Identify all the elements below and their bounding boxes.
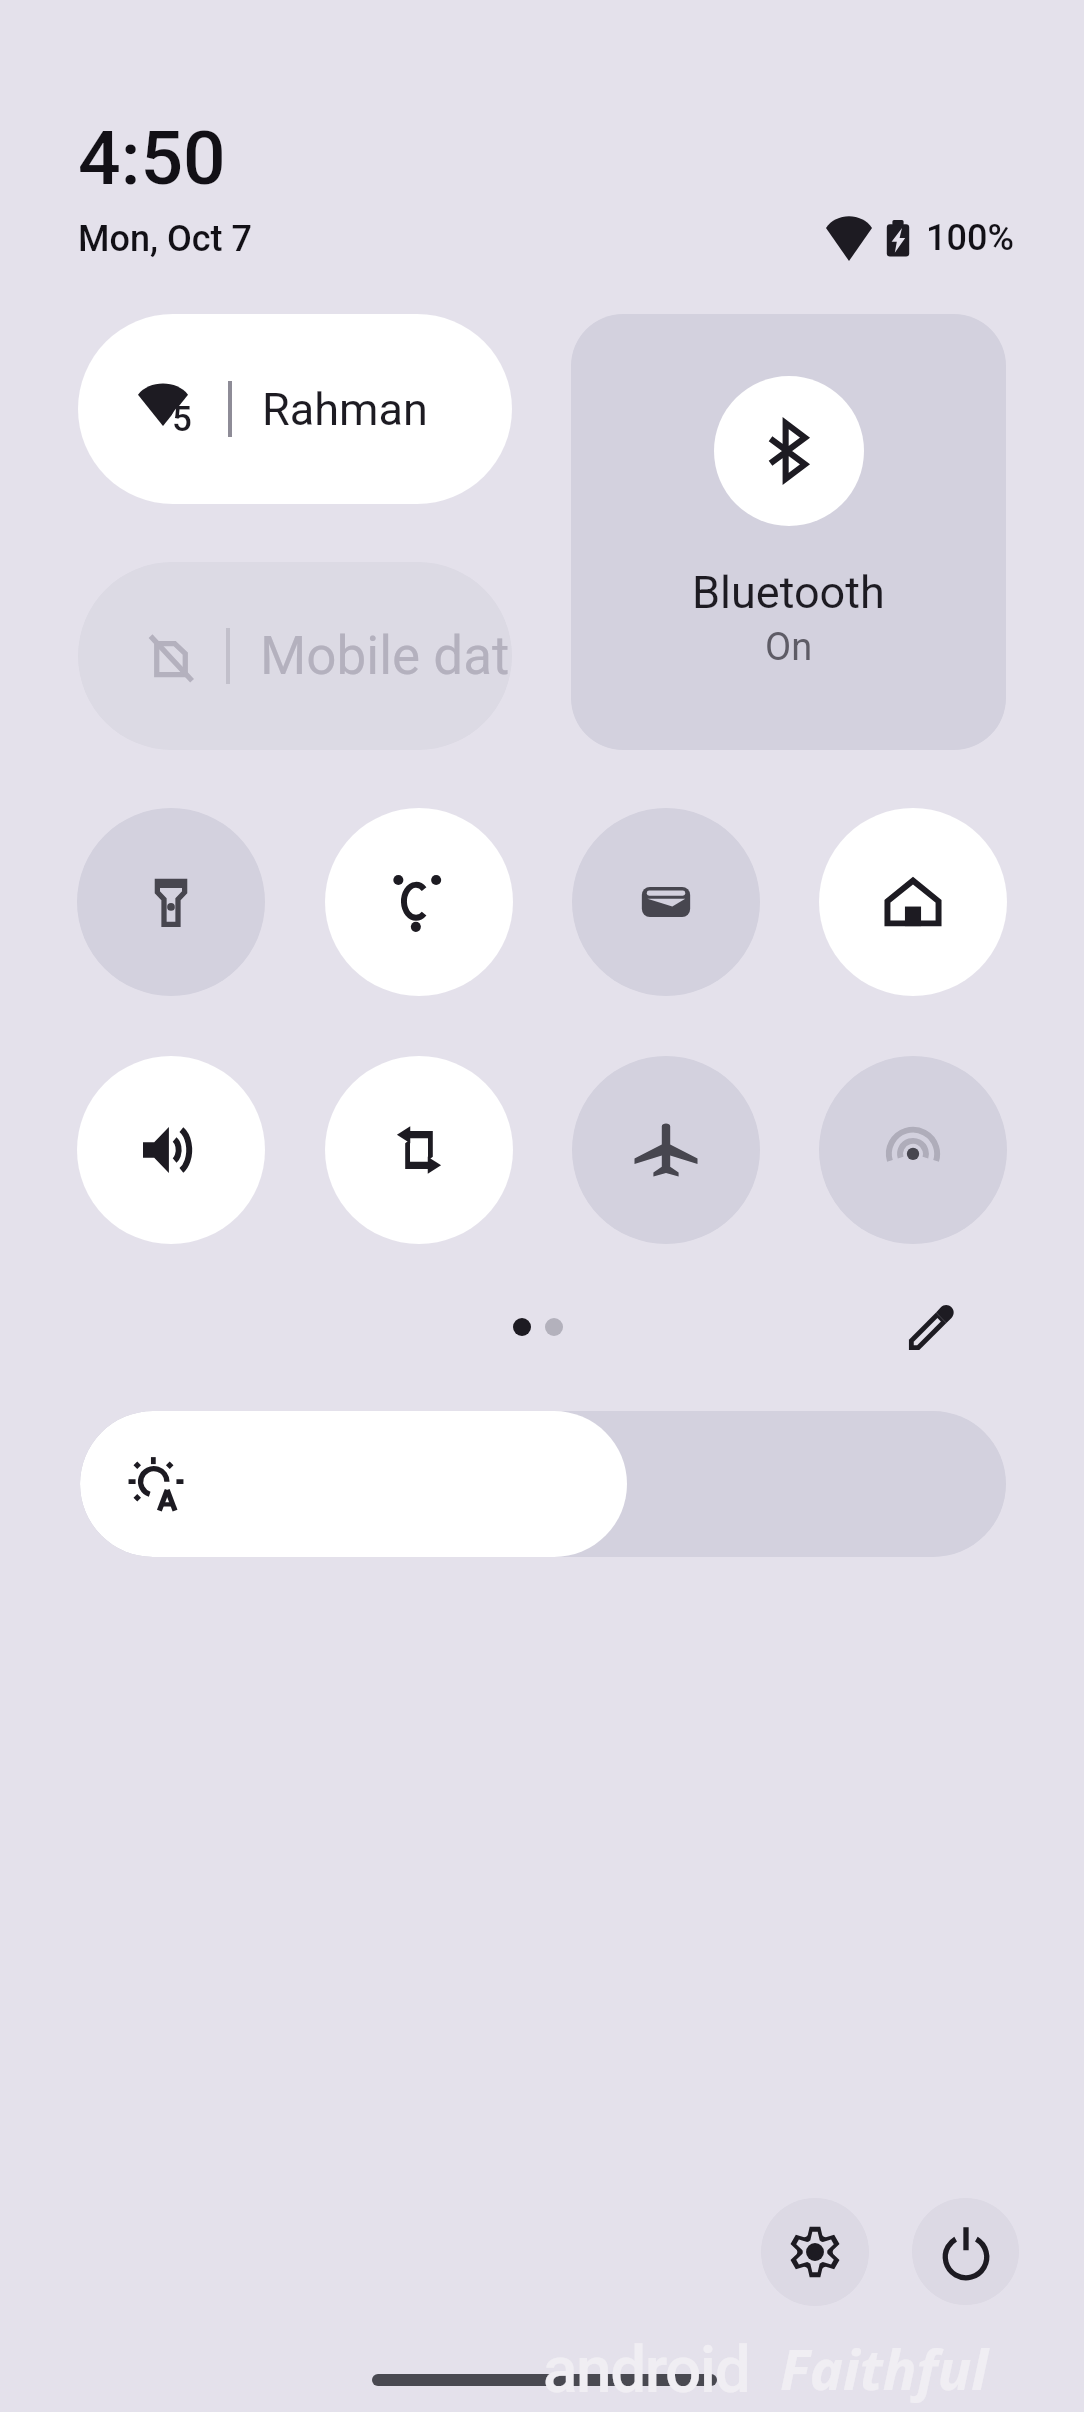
- staticText: 5: [172, 399, 192, 440]
- button[interactable]: Temperature: [325, 808, 513, 996]
- staticText: Faithful: [780, 2330, 989, 2406]
- button[interactable]: Edit tiles: [897, 1294, 965, 1362]
- staticText: Mon, Oct 7: [78, 218, 252, 260]
- button[interactable]: Home: [819, 808, 1007, 996]
- button[interactable]: Mobile data: [78, 562, 512, 750]
- staticText: 100%: [926, 217, 1014, 259]
- staticText: Bluetooth: [692, 566, 885, 619]
- button[interactable]: 5: [78, 314, 512, 504]
- button[interactable]: Hotspot: [819, 1056, 1007, 1244]
- button[interactable]: Settings: [761, 2198, 869, 2306]
- staticText: Mobile data: [260, 625, 512, 687]
- staticText: Rahman: [262, 383, 428, 436]
- button[interactable]: Power: [912, 2198, 1019, 2305]
- staticText: 4:50: [78, 114, 226, 202]
- staticText: On: [765, 625, 813, 670]
- button[interactable]: Bluetooth: [571, 314, 1006, 750]
- button[interactable]: Airplane mode: [572, 1056, 760, 1244]
- staticText: android: [543, 2333, 750, 2408]
- button[interactable]: Flashlight: [77, 808, 265, 996]
- button[interactable]: Brightness: [80, 1411, 1006, 1557]
- button[interactable]: Sound: [77, 1056, 265, 1244]
- button[interactable]: Auto rotate: [325, 1056, 513, 1244]
- button[interactable]: Wallet: [572, 808, 760, 996]
